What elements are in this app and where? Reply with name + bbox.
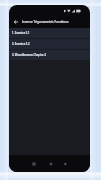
staticText: Inverse Trigonometric Functions — [22, 20, 69, 24]
staticText: 1. Exercise 3.1 — [12, 31, 30, 35]
staticText: 3. Miscellaneous Chapter-3 — [12, 53, 46, 57]
button[interactable]: 3. Miscellaneous Chapter-3 — [9, 50, 90, 60]
button[interactable]: Back — [9, 16, 22, 28]
button[interactable]: Back — [61, 160, 69, 168]
staticText: 2. Exercise 3.2 — [12, 42, 30, 46]
button[interactable]: Home — [47, 160, 55, 168]
button[interactable]: Recents — [30, 160, 38, 168]
button[interactable]: 1. Exercise 3.1 — [9, 28, 90, 38]
button[interactable]: 2. Exercise 3.2 — [9, 39, 90, 49]
